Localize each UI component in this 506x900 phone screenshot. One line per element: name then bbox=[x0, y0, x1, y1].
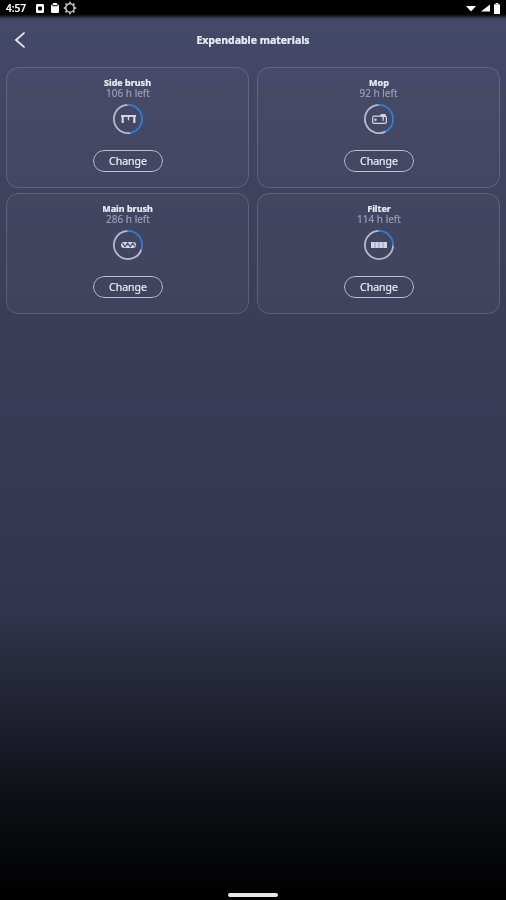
staticText: 106 h left bbox=[106, 86, 150, 100]
button[interactable]: Filter bbox=[257, 193, 500, 314]
staticText: Change bbox=[360, 154, 398, 168]
button[interactable]: Change bbox=[344, 150, 414, 172]
button[interactable]: Mop bbox=[257, 67, 500, 188]
staticText: Filter bbox=[367, 202, 391, 214]
button[interactable]: Change bbox=[93, 150, 163, 172]
staticText: Change bbox=[109, 154, 147, 168]
staticText: Change bbox=[360, 280, 398, 294]
button[interactable]: Change bbox=[93, 276, 163, 298]
staticText: Side brush bbox=[104, 76, 151, 88]
staticText: 286 h left bbox=[106, 212, 150, 226]
button[interactable]: Side brush bbox=[6, 67, 249, 188]
staticText: Main brush bbox=[102, 202, 153, 214]
button[interactable]: Main brush bbox=[6, 193, 249, 314]
staticText: Expendable materials bbox=[196, 33, 310, 47]
button[interactable]: Change bbox=[344, 276, 414, 298]
staticText: 114 h left bbox=[357, 212, 401, 226]
staticText: Change bbox=[109, 280, 147, 294]
staticText: 4:57 bbox=[6, 1, 26, 15]
staticText: Mop bbox=[369, 76, 389, 88]
button[interactable]: Back bbox=[5, 25, 35, 55]
staticText: 92 h left bbox=[359, 86, 398, 100]
